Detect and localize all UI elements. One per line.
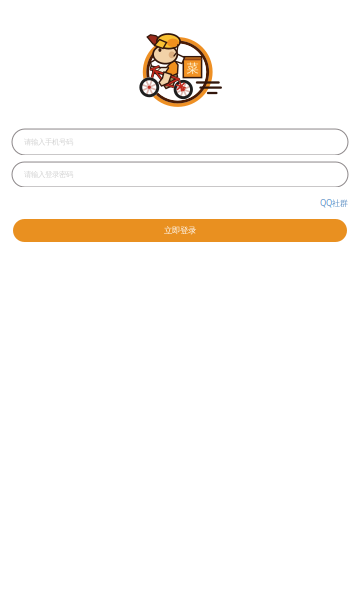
button[interactable]: QQ社群: [320, 197, 348, 208]
staticText: 请输入登录密码: [24, 170, 73, 179]
button[interactable]: 立即登录: [11, 219, 345, 242]
staticText: QQ社群: [320, 197, 348, 208]
staticText: 立即登录: [164, 225, 196, 236]
staticText: 请输入手机号码: [24, 137, 73, 147]
staticText: 菜: [186, 61, 198, 76]
